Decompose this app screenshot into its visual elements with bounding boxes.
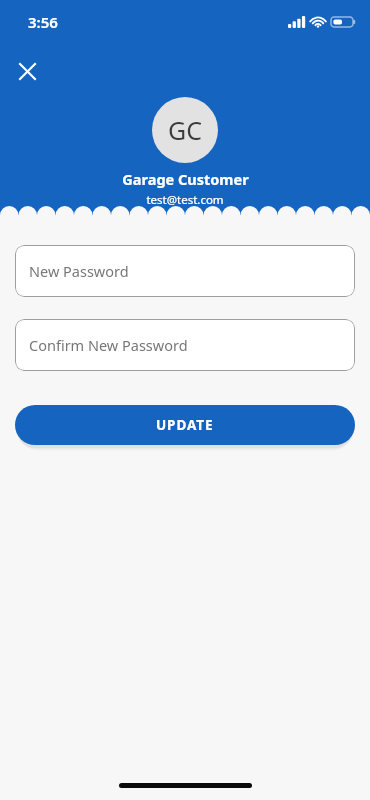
staticText: test@test.com (146, 192, 224, 208)
staticText: Confirm New Password (29, 335, 188, 355)
staticText: Garage Customer (122, 169, 249, 189)
staticText: 3:56 (28, 12, 58, 32)
staticText: UPDATE (156, 416, 214, 434)
button[interactable]: Confirm New Password (15, 319, 355, 371)
button[interactable]: Close (11, 55, 43, 87)
button[interactable]: UPDATE (15, 405, 355, 445)
staticText: New Password (29, 261, 129, 281)
staticText: GC (168, 113, 203, 147)
button[interactable]: New Password (15, 245, 355, 297)
